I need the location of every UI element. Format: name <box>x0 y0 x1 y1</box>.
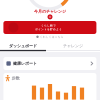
button[interactable]: ダッシュボード <box>0 41 46 51</box>
staticText: くわしくはこちら <box>40 35 64 38</box>
staticText: 今月のチャレンジ <box>34 9 66 14</box>
staticText: チャレンジ <box>63 43 83 48</box>
staticText: 歩数 <box>12 76 20 81</box>
button[interactable]: チャレンジ <box>46 41 100 51</box>
staticText: ポイントを貯めよう <box>35 28 62 31</box>
staticText: くらし館で <box>41 24 56 27</box>
staticText: ダッシュボード <box>9 43 37 48</box>
button[interactable]: 健康レポート <box>3 57 96 70</box>
staticText: 健康レポート <box>13 61 37 66</box>
